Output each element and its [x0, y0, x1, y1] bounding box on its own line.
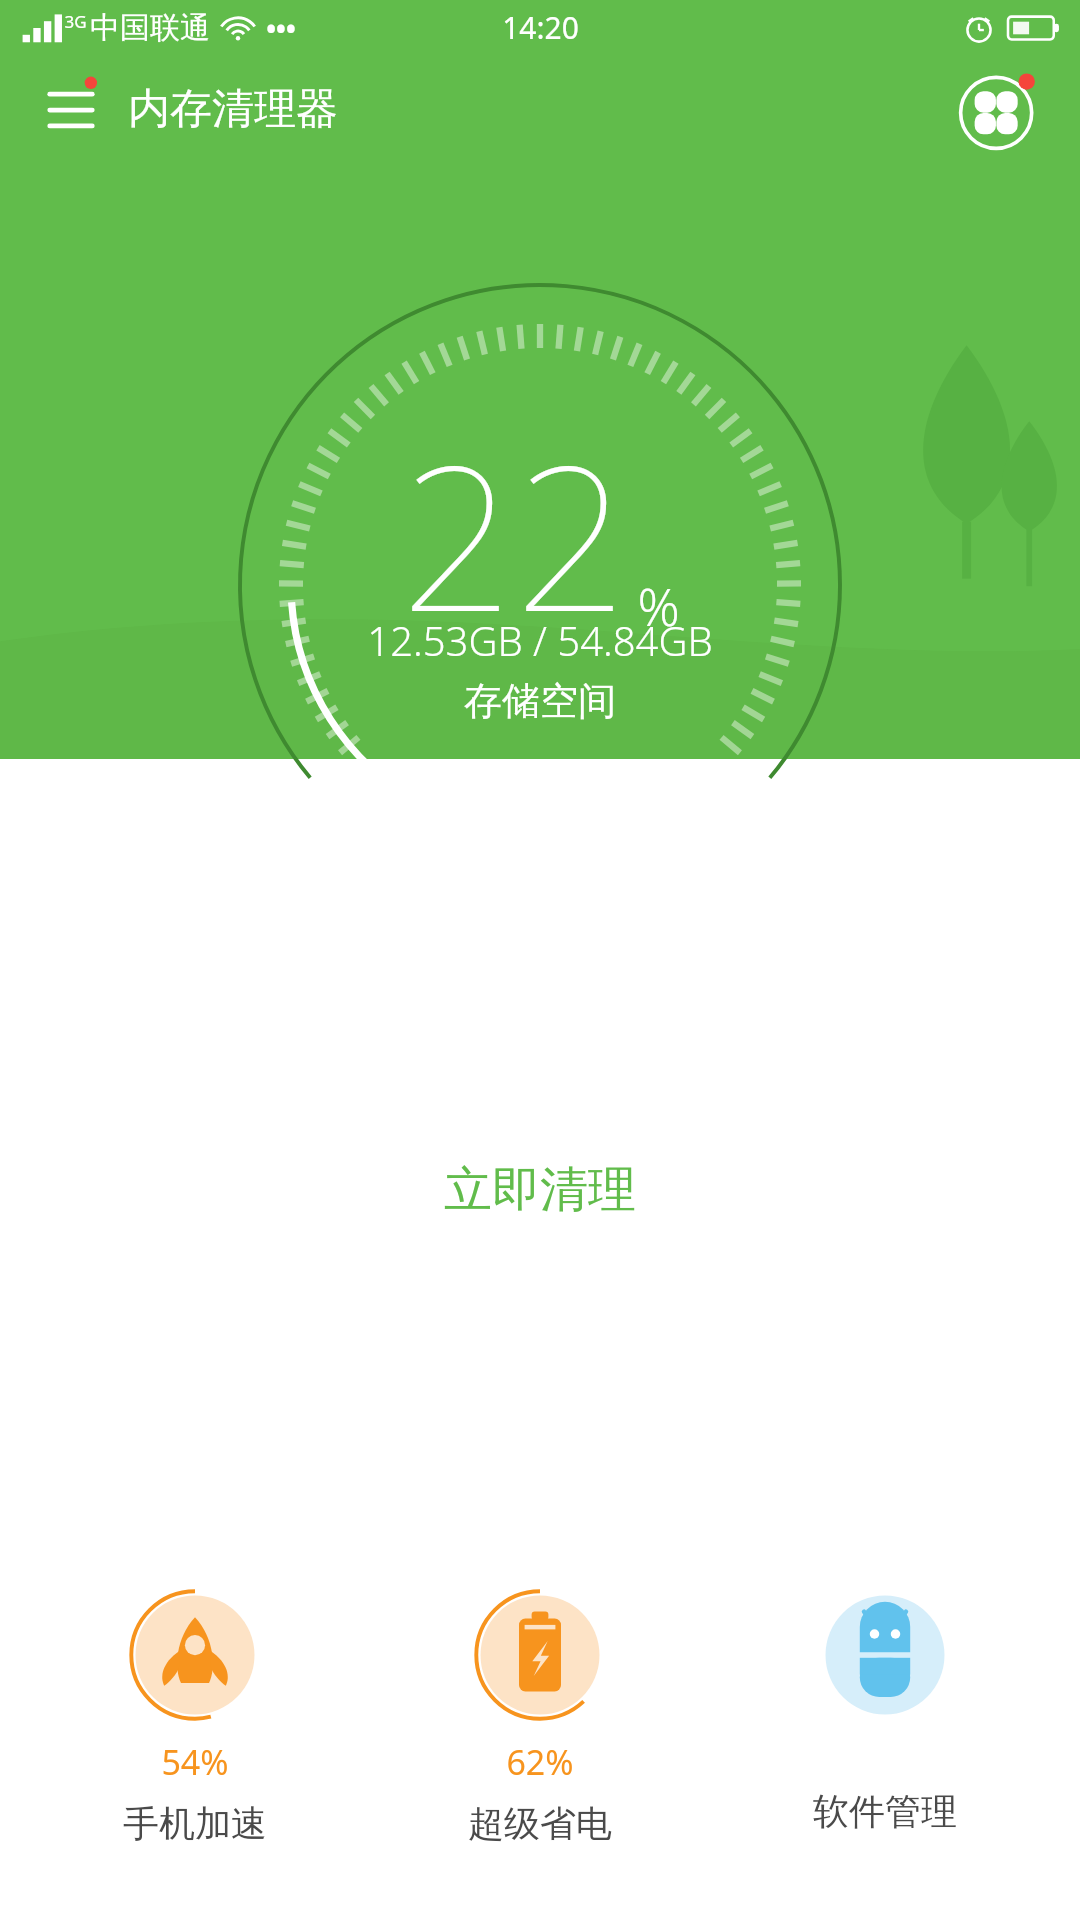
- staticText: 软件管理: [813, 1789, 957, 1834]
- staticText: 存储空间: [464, 677, 616, 725]
- staticText: 12.53GB / 54.84GB: [367, 613, 713, 667]
- button[interactable]: 立即清理: [270, 1128, 810, 1252]
- staticText: 22: [400, 397, 629, 669]
- staticText: 超级省电: [468, 1801, 612, 1846]
- staticText: 3G: [64, 10, 87, 33]
- button[interactable]: Menu: [28, 66, 114, 152]
- button[interactable]: Apps: [952, 61, 1048, 157]
- button[interactable]: 软件管理: [735, 1585, 1035, 1834]
- staticText: 立即清理: [444, 1160, 636, 1220]
- button[interactable]: 54%: [45, 1585, 345, 1846]
- staticText: 内存清理器: [128, 83, 338, 136]
- staticText: 14:20: [502, 7, 579, 48]
- staticText: •••: [266, 11, 296, 46]
- staticText: %: [637, 570, 680, 641]
- button[interactable]: 62%: [390, 1585, 690, 1846]
- staticText: 中国联通: [90, 9, 210, 47]
- staticText: 手机加速: [123, 1801, 267, 1846]
- staticText: 54%: [161, 1739, 229, 1785]
- staticText: 62%: [506, 1739, 574, 1785]
